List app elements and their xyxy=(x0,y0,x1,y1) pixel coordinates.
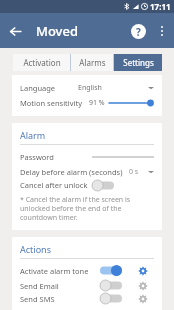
button[interactable]: Activation xyxy=(13,54,70,71)
staticText: ? xyxy=(136,25,141,39)
button[interactable]: Settings xyxy=(114,54,162,71)
button[interactable]: Password xyxy=(20,150,154,163)
staticText: Actions xyxy=(20,243,51,255)
staticText: Send Email xyxy=(20,281,59,291)
button[interactable]: Back xyxy=(0,16,30,46)
staticText: * Cancel the alarm if the screen is unlo… xyxy=(20,195,154,222)
staticText: Send SMS xyxy=(20,294,55,304)
button[interactable]: Configure Activate alarm tone xyxy=(136,264,150,278)
button[interactable]: Send Email xyxy=(20,278,154,293)
staticText: 0 s xyxy=(129,167,139,177)
staticText: Moved xyxy=(36,22,78,40)
staticText: Alarm xyxy=(20,129,46,141)
staticText: 17:11 xyxy=(150,1,171,12)
button[interactable]: Alarms xyxy=(71,54,113,71)
staticText: English xyxy=(78,83,102,93)
staticText: Language xyxy=(20,83,56,93)
button[interactable]: Toggle xyxy=(92,180,114,191)
button[interactable]: Help xyxy=(123,16,153,46)
staticText: Activate alarm tone xyxy=(20,266,89,276)
button[interactable]: Toggle xyxy=(100,293,122,304)
staticText: Activation xyxy=(23,57,61,68)
staticText: Password xyxy=(20,152,54,162)
button[interactable]: Activate alarm tone xyxy=(20,263,154,278)
button[interactable]: Send SMS xyxy=(20,293,154,304)
button[interactable]: Configure Send SMS xyxy=(136,293,150,304)
button[interactable]: Configure Send Email xyxy=(136,279,150,293)
button[interactable]: Toggle xyxy=(100,265,122,276)
staticText: Settings xyxy=(123,57,154,68)
button[interactable]: Cancel after unlock xyxy=(20,178,154,192)
staticText: Motion sensitivity xyxy=(20,98,83,108)
button[interactable]: More options xyxy=(153,16,171,46)
staticText: Delay before alarm (seconds) xyxy=(20,167,123,177)
button[interactable]: Toggle xyxy=(100,280,122,291)
staticText: 91 % xyxy=(89,98,105,108)
button[interactable]: Language xyxy=(20,81,154,95)
staticText: Alarms xyxy=(79,57,106,68)
staticText: Cancel after unlock xyxy=(20,180,88,190)
button[interactable] xyxy=(109,97,154,109)
button[interactable]: Delay before alarm (seconds) xyxy=(20,165,154,178)
